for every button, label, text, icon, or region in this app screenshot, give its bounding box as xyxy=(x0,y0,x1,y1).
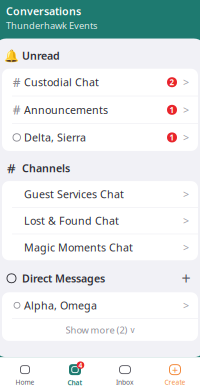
staticText: + xyxy=(172,363,178,377)
staticText: Home xyxy=(15,378,34,386)
staticText: Conversations xyxy=(6,4,81,18)
button[interactable]: Inbox xyxy=(100,362,150,387)
staticText: Show more (2) xyxy=(65,324,127,336)
button[interactable]: + xyxy=(150,362,200,387)
staticText: > xyxy=(183,103,189,117)
button[interactable]: Delta, Sierra xyxy=(2,124,198,151)
staticText: Alpha, Omega xyxy=(24,298,97,312)
staticText: Inbox xyxy=(116,378,134,386)
staticText: 1 xyxy=(169,132,174,143)
staticText: > xyxy=(183,214,189,228)
staticText: > xyxy=(183,187,189,201)
staticText: Delta, Sierra xyxy=(24,130,86,144)
staticText: 🔔 xyxy=(4,49,19,62)
button[interactable]: Show more (2) xyxy=(2,319,198,341)
staticText: Thunderhawk Events xyxy=(6,19,97,32)
staticText: 2 xyxy=(169,77,174,87)
staticText: Direct Messages xyxy=(22,271,105,285)
button[interactable]: Lost & Found Chat xyxy=(2,208,198,234)
staticText: > xyxy=(183,240,189,254)
staticText: v xyxy=(130,325,134,335)
button[interactable]: New direct message xyxy=(178,270,194,286)
staticText: Unread xyxy=(22,49,60,63)
staticText: + xyxy=(181,268,190,289)
button[interactable]: # xyxy=(2,69,198,96)
staticText: # xyxy=(13,102,21,118)
button[interactable]: # xyxy=(2,96,198,123)
button[interactable]: 4 xyxy=(50,361,100,388)
staticText: Custodial Chat xyxy=(24,75,99,89)
button[interactable]: Guest Services Chat xyxy=(2,181,198,207)
staticText: 1 xyxy=(169,104,174,115)
staticText: > xyxy=(183,130,189,144)
button[interactable]: Home xyxy=(0,362,50,387)
button[interactable]: Alpha, Omega xyxy=(2,292,198,318)
staticText: Guest Services Chat xyxy=(24,187,124,201)
staticText: Create xyxy=(164,378,185,386)
staticText: # xyxy=(13,74,21,90)
staticText: Magic Moments Chat xyxy=(24,240,133,254)
staticText: Announcements xyxy=(24,103,108,117)
staticText: # xyxy=(7,159,16,177)
staticText: > xyxy=(183,298,189,312)
staticText: Chat xyxy=(67,378,82,387)
button[interactable]: Magic Moments Chat xyxy=(2,234,198,260)
staticText: 4 xyxy=(78,361,82,370)
staticText: Lost & Found Chat xyxy=(24,214,119,228)
staticText: > xyxy=(183,75,189,89)
staticText: Channels xyxy=(22,161,70,175)
